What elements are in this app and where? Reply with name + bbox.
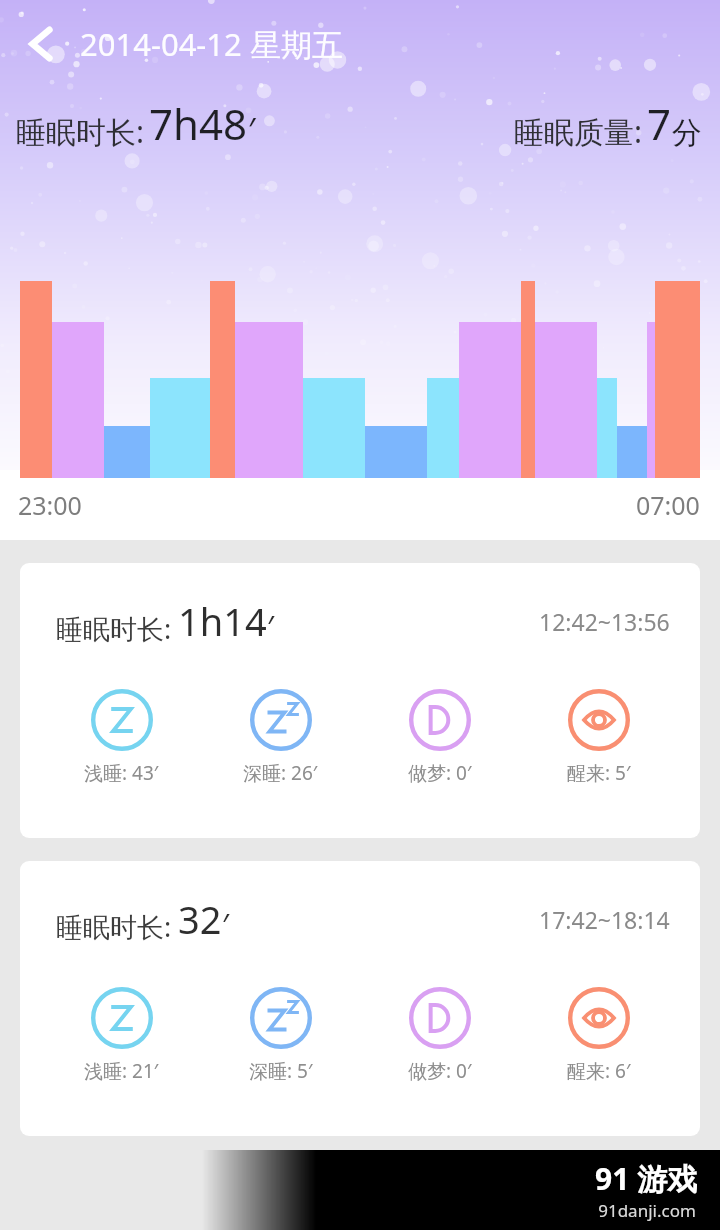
staticText: 睡眠质量: bbox=[514, 111, 643, 152]
staticText: 17:42~18:14 bbox=[539, 904, 670, 935]
staticText: 深睡: 5′ bbox=[249, 1058, 313, 1084]
button[interactable]: 睡眠时长: bbox=[20, 563, 700, 838]
staticText: 睡眠时长: bbox=[56, 908, 172, 945]
staticText: 1h14 bbox=[178, 595, 267, 647]
staticText: 醒来: 6′ bbox=[567, 1058, 631, 1084]
staticText: 91 游戏 bbox=[595, 1158, 698, 1199]
staticText: 23:00 bbox=[18, 488, 82, 522]
staticText: 07:00 bbox=[636, 488, 700, 522]
staticText: 分 bbox=[672, 114, 702, 152]
staticText: ′ bbox=[222, 904, 229, 945]
staticText: 7h48 bbox=[149, 95, 248, 152]
staticText: 32 bbox=[178, 893, 222, 945]
staticText: ′ bbox=[267, 606, 274, 647]
staticText: 睡眠时长: bbox=[16, 111, 145, 152]
button[interactable]: 睡眠时长: bbox=[20, 861, 700, 1136]
staticText: 浅睡: 21′ bbox=[84, 1058, 159, 1084]
staticText: 浅睡: 43′ bbox=[84, 760, 159, 786]
staticText: 91danji.com bbox=[598, 1199, 696, 1222]
staticText: 7 bbox=[647, 95, 672, 152]
staticText: 睡眠时长: bbox=[56, 610, 172, 647]
staticText: 做梦: 0′ bbox=[408, 760, 472, 786]
staticText: 醒来: 5′ bbox=[567, 760, 631, 786]
staticText: ′ bbox=[248, 108, 256, 152]
button[interactable]: Back bbox=[14, 16, 70, 72]
staticText: 2014-04-12 星期五 bbox=[80, 23, 343, 65]
staticText: 12:42~13:56 bbox=[539, 606, 670, 637]
staticText: 深睡: 26′ bbox=[243, 760, 318, 786]
staticText: 做梦: 0′ bbox=[408, 1058, 472, 1084]
